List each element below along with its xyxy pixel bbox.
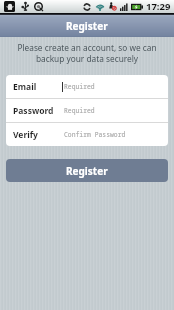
staticText: 17:29 [146, 0, 171, 13]
staticText: Email [13, 81, 37, 93]
button[interactable]: Password [6, 99, 168, 122]
button[interactable]: Email [6, 75, 168, 98]
staticText: Required [64, 82, 95, 91]
staticText: Verify [13, 129, 38, 141]
staticText: Password [13, 105, 54, 117]
staticText: Required [64, 106, 95, 115]
button[interactable]: Register [6, 159, 168, 182]
staticText: Register [66, 164, 108, 178]
button[interactable]: Verify [6, 123, 168, 146]
staticText: Please create an account, so we can back… [4, 42, 170, 65]
staticText: Confirm Password [64, 130, 126, 139]
staticText: Register [66, 19, 108, 33]
